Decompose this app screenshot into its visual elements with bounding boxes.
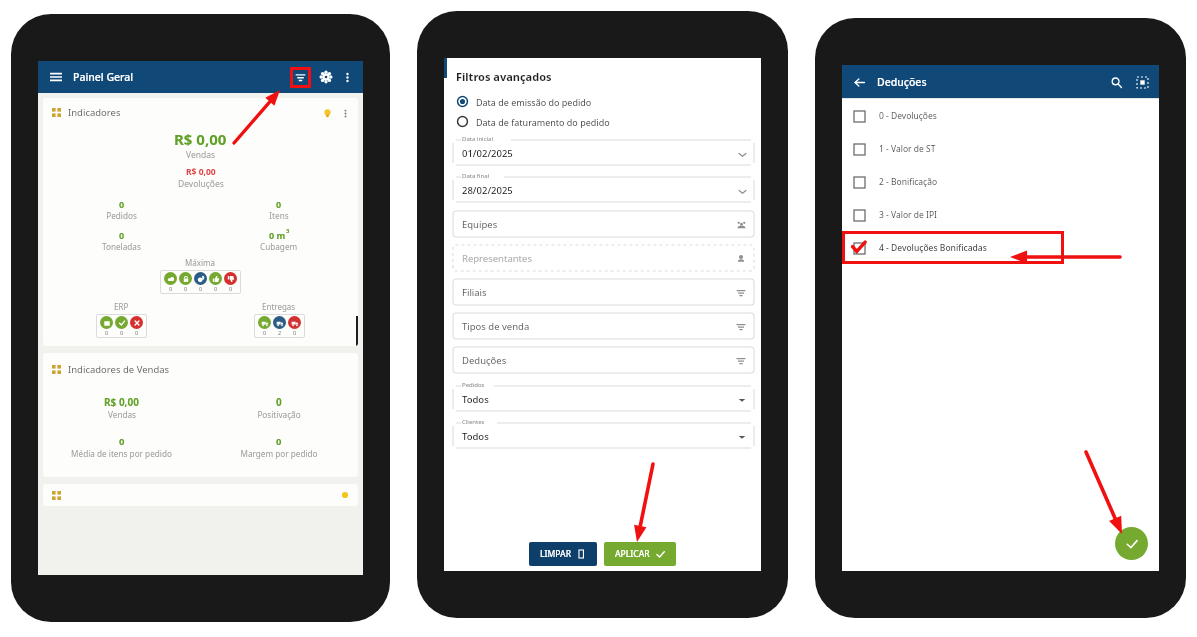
button[interactable]: Data inicial bbox=[449, 135, 757, 166]
button[interactable]: Indicadores de Vendas bbox=[43, 353, 358, 477]
button[interactable]: Confirmar bbox=[1115, 527, 1148, 560]
button[interactable]: Opções do cartão bbox=[339, 107, 351, 119]
staticText: 0 - Devoluções bbox=[879, 110, 937, 122]
staticText: 0 bbox=[120, 329, 124, 336]
staticText: R$ 0,00 bbox=[186, 166, 216, 178]
button[interactable]: 4 - Devoluções Bonificadas bbox=[842, 231, 1064, 264]
staticText: 0 bbox=[263, 329, 267, 336]
button[interactable]: PIE bbox=[194, 272, 207, 292]
staticText: 1 - Valor de ST bbox=[879, 143, 936, 155]
button[interactable]: Pedidos bbox=[735, 393, 749, 407]
button[interactable]: Data final bbox=[735, 184, 749, 198]
button[interactable]: Pedidos bbox=[449, 381, 757, 412]
staticText: APLICAR bbox=[615, 548, 650, 560]
button[interactable]: APLICAR bbox=[604, 542, 676, 566]
button[interactable]: Deduções bbox=[449, 346, 757, 375]
staticText: Representantes bbox=[462, 252, 532, 265]
staticText: 2 bbox=[278, 329, 282, 336]
button[interactable]: BOX bbox=[100, 316, 113, 336]
button[interactable]: Filiais bbox=[449, 278, 757, 307]
staticText: Data final bbox=[462, 172, 490, 180]
button[interactable]: Data de faturamento do pedido bbox=[449, 113, 757, 130]
button[interactable]: Representantes bbox=[734, 252, 748, 266]
staticText: Data de faturamento do pedido bbox=[476, 116, 610, 128]
button[interactable]: LIMPAR bbox=[529, 542, 597, 566]
button[interactable]: Data inicial bbox=[735, 147, 749, 161]
staticText: Deduções bbox=[877, 75, 927, 89]
staticText: 01/02/2025 bbox=[462, 147, 513, 160]
staticText: Devoluções bbox=[178, 178, 224, 190]
staticText: Pedidos bbox=[462, 381, 485, 389]
button[interactable]: THUMB_UP bbox=[209, 272, 222, 292]
button[interactable]: Tipos de venda bbox=[449, 312, 757, 341]
staticText: Todos bbox=[462, 430, 489, 443]
button[interactable]: CROSS bbox=[130, 316, 143, 336]
staticText: Data inicial bbox=[462, 135, 493, 143]
button[interactable]: Mais opções bbox=[340, 70, 354, 84]
button[interactable]: Configurações bbox=[318, 69, 334, 85]
button[interactable]: Equipes bbox=[449, 210, 757, 239]
staticText: Cubagem bbox=[260, 241, 298, 252]
staticText: Itens bbox=[269, 210, 289, 221]
staticText: Máxima bbox=[185, 257, 216, 268]
staticText: 3 - Valor de IPI bbox=[879, 209, 937, 221]
button[interactable]: Clientes bbox=[735, 430, 749, 444]
staticText: 0 bbox=[276, 395, 282, 409]
button[interactable]: TRUCK bbox=[288, 316, 301, 336]
staticText: 0 bbox=[229, 285, 233, 292]
staticText: Média de itens por pedido bbox=[71, 448, 172, 459]
button[interactable]: 1 - Valor de ST bbox=[842, 132, 1159, 165]
button[interactable]: Selecionar todos bbox=[1134, 74, 1150, 90]
staticText: Data de emissão do pedido bbox=[476, 96, 592, 108]
button[interactable]: 3 - Valor de IPI bbox=[842, 198, 1159, 231]
button[interactable]: 0 - Devoluções bbox=[842, 99, 1159, 132]
button[interactable]: Filtro bbox=[290, 67, 311, 88]
staticText: R$ 0,00 bbox=[174, 129, 227, 149]
staticText: 3 bbox=[286, 227, 290, 235]
staticText: Pedidos bbox=[106, 210, 137, 221]
button[interactable]: Equipes bbox=[734, 218, 748, 232]
button[interactable]: CHECK bbox=[115, 316, 128, 336]
button[interactable]: 2 - Bonificação bbox=[842, 165, 1159, 198]
staticText: 0 bbox=[135, 329, 139, 336]
staticText: 4 - Devoluções Bonificadas bbox=[879, 242, 987, 254]
staticText: ERP bbox=[114, 301, 129, 312]
staticText: Entregas bbox=[262, 301, 296, 312]
staticText: 0 bbox=[119, 198, 125, 210]
staticText: R$ 0,00 bbox=[104, 395, 139, 409]
staticText: Tipos de venda bbox=[462, 320, 530, 333]
staticText: Filiais bbox=[462, 286, 487, 299]
button[interactable]: LOCK bbox=[179, 272, 192, 292]
button[interactable]: TRUCK bbox=[273, 316, 286, 336]
button[interactable]: Deduções bbox=[734, 354, 748, 368]
staticText: 0 bbox=[293, 329, 297, 336]
staticText: Indicadores de Vendas bbox=[68, 363, 170, 376]
button[interactable]: CLOUD bbox=[164, 272, 177, 292]
staticText: 28/02/2025 bbox=[462, 184, 513, 197]
staticText: Positivação bbox=[257, 409, 301, 420]
staticText: Painel Geral bbox=[73, 70, 134, 84]
staticText: 0 bbox=[119, 435, 125, 448]
button[interactable]: Representantes bbox=[449, 244, 757, 273]
button[interactable]: Data final bbox=[449, 172, 757, 203]
button[interactable]: Filiais bbox=[734, 286, 748, 300]
button[interactable]: Indicadores bbox=[43, 98, 358, 346]
button[interactable] bbox=[43, 484, 358, 506]
staticText: 0 bbox=[276, 198, 282, 210]
button[interactable]: Clientes bbox=[449, 418, 757, 449]
button[interactable]: THUMB_DOWN bbox=[224, 272, 237, 292]
button[interactable]: Pesquisar bbox=[1108, 74, 1124, 90]
button[interactable]: Voltar bbox=[851, 74, 867, 90]
button[interactable]: Menu bbox=[47, 68, 65, 86]
staticText: LIMPAR bbox=[540, 548, 572, 560]
staticText: Margem por pedido bbox=[240, 448, 318, 459]
button[interactable]: TRUCK bbox=[258, 316, 271, 336]
button[interactable]: Dica bbox=[321, 107, 333, 119]
button[interactable]: Data de emissão do pedido bbox=[449, 93, 757, 110]
staticText: Equipes bbox=[462, 218, 498, 231]
staticText: 0 bbox=[184, 285, 188, 292]
staticText: 0 bbox=[105, 329, 109, 336]
button[interactable]: Tipos de venda bbox=[734, 320, 748, 334]
staticText: Vendas bbox=[108, 409, 136, 420]
staticText: Indicadores bbox=[68, 106, 121, 119]
